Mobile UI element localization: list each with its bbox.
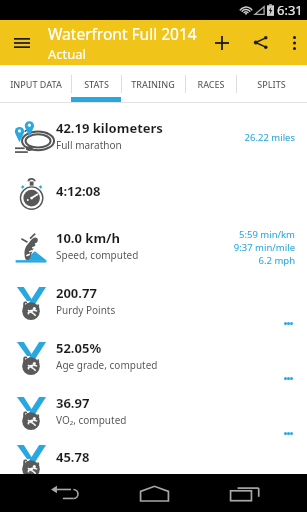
staticText: Speed, computed (56, 248, 139, 262)
staticText: Actual (48, 45, 86, 63)
button[interactable]: Share (241, 20, 281, 65)
button[interactable]: Add (202, 20, 241, 65)
staticText: RACES (197, 78, 225, 90)
button[interactable]: STATS (71, 65, 121, 103)
button[interactable]: 4:12:08 (0, 165, 307, 220)
staticText: Waterfront Full 2014 (48, 23, 197, 44)
button[interactable]: 10.0 km/h (0, 220, 307, 275)
staticText: Age grade, computed (56, 358, 158, 372)
button[interactable]: TRAINING (121, 65, 185, 103)
staticText: TRAINING (131, 78, 175, 90)
staticText: 4:12:08 (56, 182, 101, 200)
staticText: 6.2 mph (258, 254, 295, 267)
staticText: 45.78 (56, 448, 90, 466)
button[interactable]: INPUT DATA (0, 65, 71, 103)
staticText: 6:31 (277, 1, 303, 19)
button[interactable]: Home (130, 474, 178, 512)
staticText: 52.05% (56, 339, 102, 357)
button[interactable]: Back (40, 474, 88, 512)
staticText: INPUT DATA (10, 78, 62, 90)
staticText: STATS (84, 78, 109, 90)
button[interactable]: More options (281, 20, 307, 65)
staticText: VO₂, computed (56, 413, 127, 427)
button[interactable]: 200.77 (0, 275, 307, 330)
button[interactable]: 42.19 kilometers (0, 110, 307, 165)
staticText: 10.0 km/h (56, 229, 120, 247)
button[interactable]: 36.97 (0, 385, 307, 440)
button[interactable]: RACES (185, 65, 236, 103)
button[interactable]: SPLITS (236, 65, 307, 103)
staticText: 9:37 min/mile (233, 241, 295, 254)
staticText: 26.22 miles (244, 131, 295, 144)
button[interactable]: Open navigation drawer (0, 20, 44, 65)
button[interactable]: Recent apps (220, 474, 268, 512)
staticText: Purdy Points (56, 303, 116, 317)
staticText: Full marathon (56, 138, 122, 152)
staticText: 200.77 (56, 284, 97, 302)
staticText: 42.19 kilometers (56, 119, 163, 137)
staticText: 5:59 min/km (238, 228, 295, 241)
button[interactable]: 45.78 (0, 440, 307, 481)
staticText: 36.97 (56, 394, 90, 412)
button[interactable]: 52.05% (0, 330, 307, 385)
staticText: SPLITS (257, 78, 286, 90)
